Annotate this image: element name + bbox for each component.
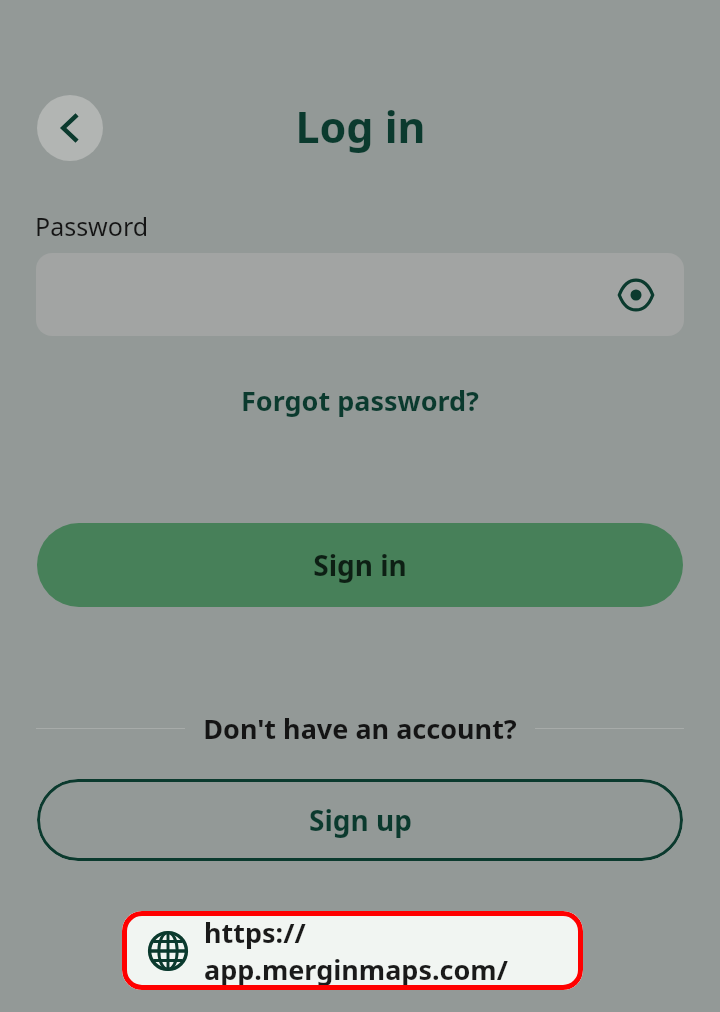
- staticText: Forgot password?: [241, 382, 479, 419]
- button[interactable]: Forgot password?: [233, 378, 487, 423]
- button[interactable]: Show password: [36, 253, 684, 336]
- staticText: Sign in: [313, 546, 407, 584]
- button[interactable]: Sign in: [37, 523, 683, 607]
- button[interactable]: Sign up: [37, 779, 683, 861]
- staticText: Log in: [295, 97, 426, 156]
- staticText: Sign up: [309, 801, 412, 839]
- staticText: https://app.merginmaps.com/: [204, 914, 583, 988]
- button[interactable]: https://app.merginmaps.com/: [122, 911, 583, 990]
- staticText: Don't have an account?: [203, 710, 517, 747]
- button[interactable]: Back: [37, 95, 103, 161]
- staticText: Password: [35, 209, 149, 243]
- button[interactable]: Show password: [614, 273, 658, 317]
